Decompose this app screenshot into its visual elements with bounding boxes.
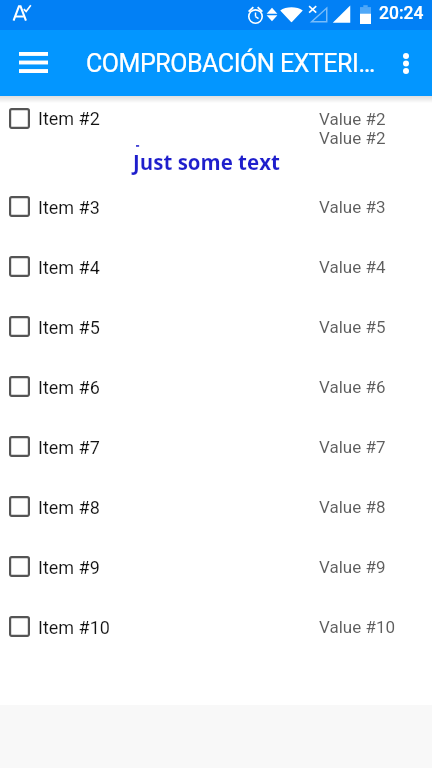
button[interactable]: Item #8 <box>0 476 432 536</box>
staticText: Item #2 <box>38 108 100 129</box>
staticText: Value #5 <box>319 317 386 337</box>
button[interactable]: Item #10 <box>0 596 432 656</box>
button[interactable]: Item #2 <box>0 96 432 176</box>
button[interactable]: More options <box>380 30 432 96</box>
staticText: Value #9 <box>319 557 386 577</box>
staticText: Item #8 <box>38 497 100 518</box>
staticText: Item #10 <box>38 617 110 638</box>
staticText: Item #6 <box>38 377 100 398</box>
staticText: Item #7 <box>38 437 100 458</box>
staticText: Value #8 <box>319 497 386 517</box>
staticText: Item #3 <box>38 197 100 218</box>
staticText: Item #9 <box>38 557 100 578</box>
staticText: Value #6 <box>319 377 386 397</box>
staticText: COMPROBACIÓN EXTERIOR <box>86 49 379 78</box>
button[interactable]: Item #3 <box>0 176 432 236</box>
staticText: Item #4 <box>38 257 100 278</box>
staticText: Just some text <box>133 148 280 176</box>
staticText: Value #2 Value #2 <box>319 109 386 148</box>
staticText: Value #3 <box>319 197 386 217</box>
staticText: Value #7 <box>319 437 386 457</box>
staticText: Value #4 <box>319 257 386 277</box>
button[interactable]: Item #5 <box>0 296 432 356</box>
button[interactable]: Item #6 <box>0 356 432 416</box>
staticText: 20:24 <box>379 3 424 24</box>
button[interactable]: Item #9 <box>0 536 432 596</box>
button[interactable]: Item #7 <box>0 416 432 476</box>
button[interactable]: Item #4 <box>0 236 432 296</box>
staticText: Item #5 <box>38 317 100 338</box>
button[interactable]: Open navigation drawer <box>0 30 66 96</box>
staticText: Value #10 <box>319 617 396 637</box>
